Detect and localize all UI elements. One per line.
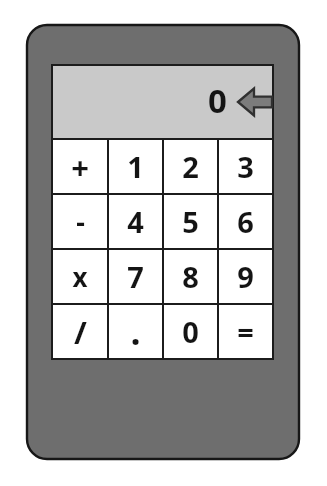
staticText: 0 [208, 78, 227, 123]
staticText: 5 [182, 202, 199, 241]
staticText: x [72, 259, 88, 294]
button[interactable]: 6 [219, 195, 272, 248]
button[interactable]: 4 [109, 195, 162, 248]
button[interactable]: 3 [219, 140, 272, 193]
button[interactable]: Backspace [236, 86, 272, 118]
staticText: 4 [127, 202, 144, 241]
staticText: 7 [127, 257, 144, 296]
staticText: 2 [182, 147, 199, 186]
staticText: 8 [182, 257, 199, 296]
staticText: . [130, 307, 141, 356]
staticText: 3 [237, 147, 254, 186]
button[interactable]: - [53, 195, 107, 248]
button[interactable]: = [219, 305, 272, 358]
staticText: + [71, 146, 89, 188]
staticText: = [237, 312, 254, 351]
staticText: / [74, 311, 87, 353]
staticText: 0 [182, 312, 199, 351]
button[interactable]: 0 [164, 305, 217, 358]
button[interactable]: . [109, 305, 162, 358]
staticText: 6 [237, 202, 254, 241]
staticText: 9 [237, 257, 254, 296]
button[interactable]: x [53, 250, 107, 303]
button[interactable]: 9 [219, 250, 272, 303]
button[interactable]: + [53, 140, 107, 193]
button[interactable]: 1 [109, 140, 162, 193]
button[interactable]: 5 [164, 195, 217, 248]
button[interactable]: / [53, 305, 107, 358]
button[interactable]: 8 [164, 250, 217, 303]
staticText: - [76, 203, 85, 240]
staticText: 1 [127, 147, 144, 186]
button[interactable]: 7 [109, 250, 162, 303]
button[interactable]: 2 [164, 140, 217, 193]
